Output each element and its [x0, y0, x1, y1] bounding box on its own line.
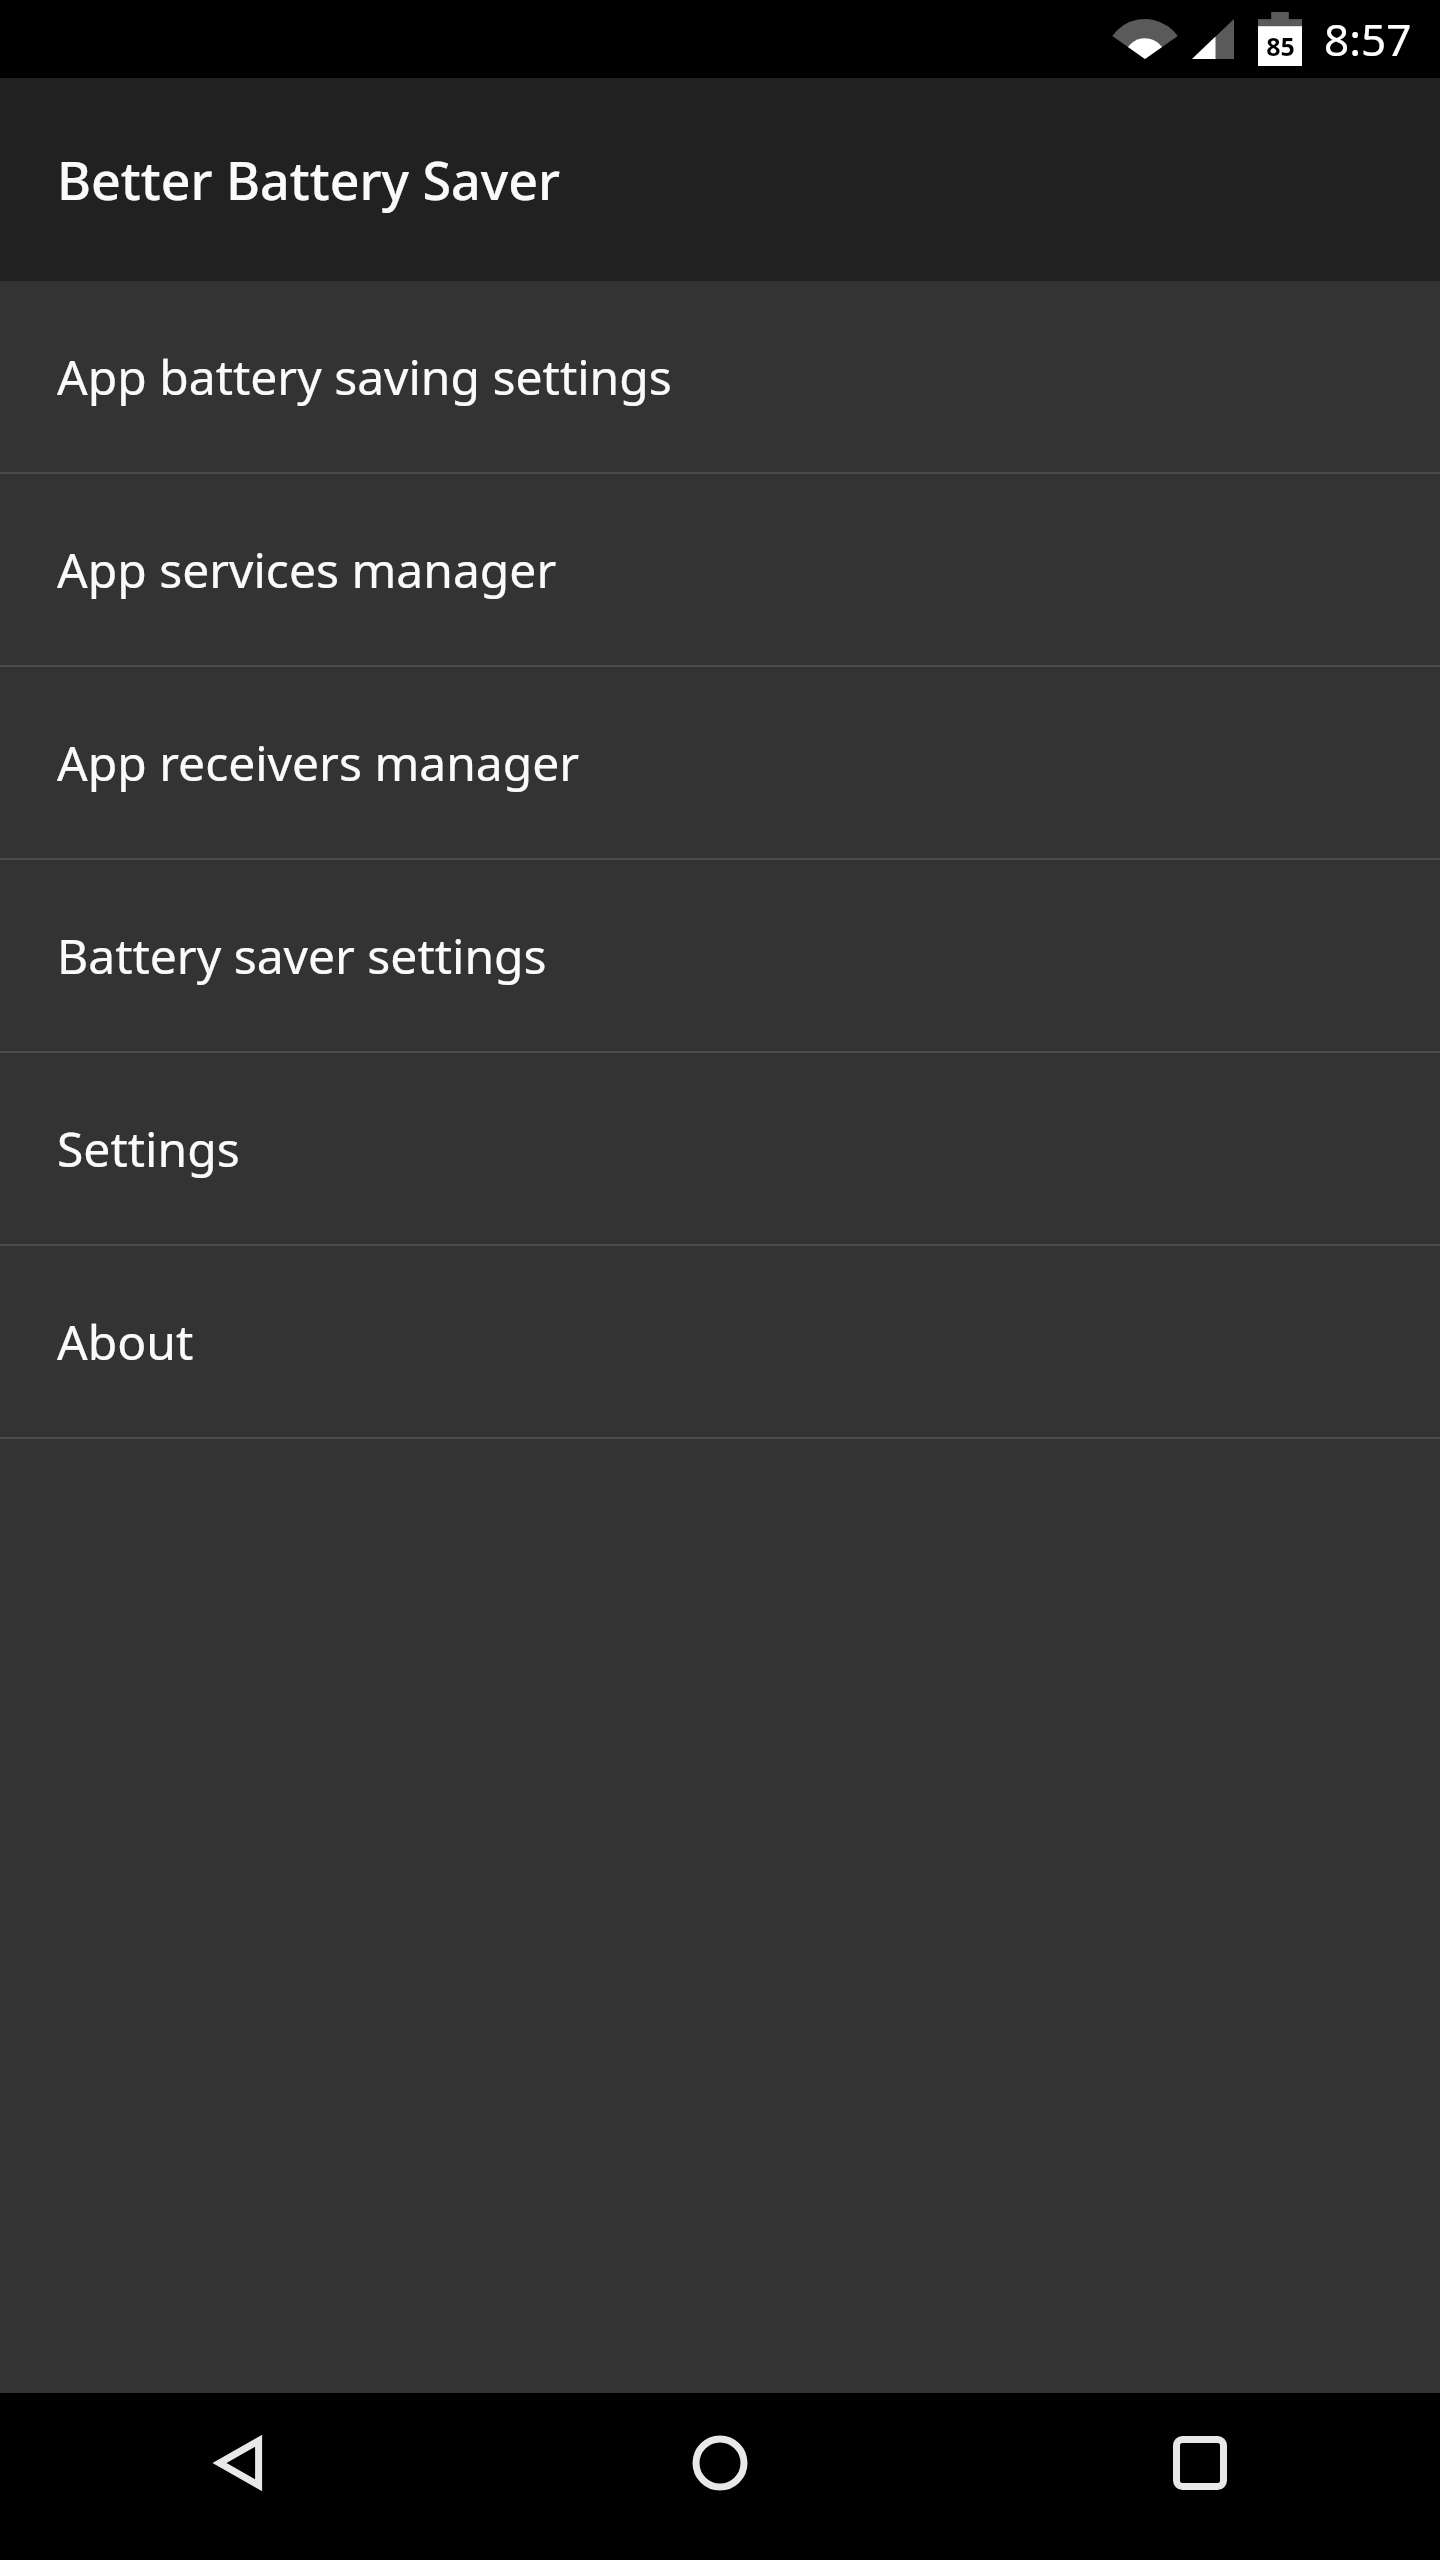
- staticText: 8:57: [1324, 9, 1412, 69]
- button[interactable]: About: [0, 1246, 1440, 1437]
- staticText: 85: [1266, 29, 1295, 63]
- staticText: Battery saver settings: [57, 923, 547, 988]
- button[interactable]: App battery saving settings: [0, 281, 1440, 472]
- button[interactable]: Settings: [0, 1053, 1440, 1244]
- staticText: App services manager: [57, 537, 557, 602]
- button[interactable]: Home: [480, 2393, 960, 2560]
- button[interactable]: Recent apps: [960, 2393, 1440, 2560]
- button[interactable]: Back: [0, 2393, 480, 2560]
- staticText: About: [57, 1309, 194, 1374]
- staticText: App receivers manager: [57, 730, 580, 795]
- staticText: App battery saving settings: [57, 344, 672, 409]
- button[interactable]: App receivers manager: [0, 667, 1440, 858]
- button[interactable]: App services manager: [0, 474, 1440, 665]
- button[interactable]: Battery saver settings: [0, 860, 1440, 1051]
- staticText: Settings: [57, 1116, 240, 1181]
- staticText: Better Battery Saver: [57, 144, 561, 215]
